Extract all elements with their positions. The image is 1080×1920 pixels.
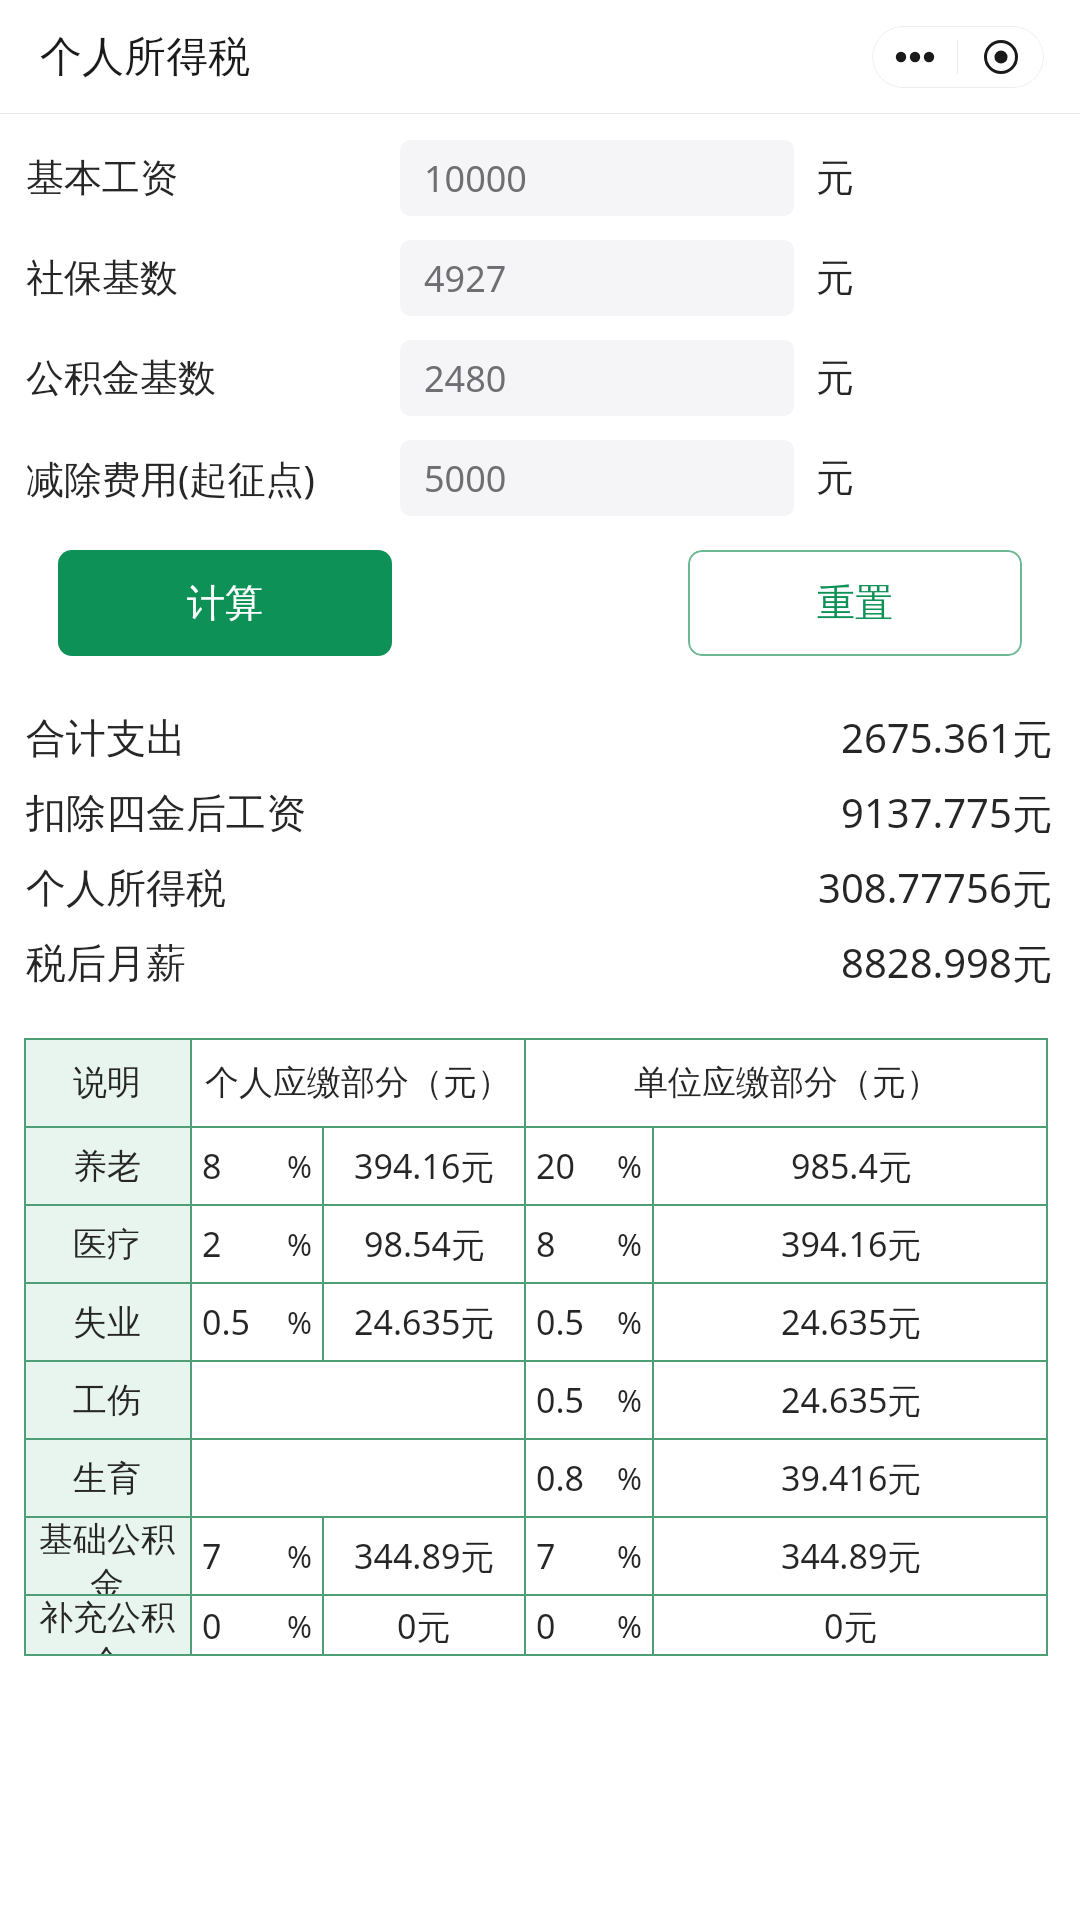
staticText: 基础公积金 bbox=[24, 1518, 190, 1594]
staticText: 308.77756元 bbox=[818, 860, 1052, 915]
staticText: 医疗 bbox=[73, 1223, 141, 1266]
staticText: 元 bbox=[816, 154, 854, 202]
staticText: 2 bbox=[202, 1221, 222, 1267]
staticText: 9137.775元 bbox=[841, 785, 1052, 840]
staticText: 生育 bbox=[73, 1457, 141, 1500]
staticText: % bbox=[617, 1224, 642, 1265]
staticText: 计算 bbox=[187, 579, 263, 627]
staticText: 扣除四金后工资 bbox=[26, 788, 306, 838]
staticText: % bbox=[287, 1606, 312, 1647]
staticText: % bbox=[617, 1536, 642, 1577]
staticText: 失业 bbox=[73, 1301, 141, 1344]
staticText: % bbox=[617, 1146, 642, 1187]
staticText: 8828.998元 bbox=[841, 935, 1052, 990]
staticText: 5000 bbox=[424, 454, 507, 503]
staticText: 养老 bbox=[73, 1145, 141, 1188]
button[interactable]: 减除费用(起征点) bbox=[0, 428, 1080, 528]
staticText: 税后月薪 bbox=[26, 938, 186, 988]
staticText: 0.5 bbox=[536, 1299, 585, 1345]
staticText: % bbox=[617, 1302, 642, 1343]
staticText: 20 bbox=[536, 1143, 575, 1189]
button[interactable]: 计算 bbox=[58, 550, 392, 656]
button[interactable]: 税后月薪 bbox=[0, 925, 1080, 1000]
button[interactable]: 合计支出 bbox=[0, 700, 1080, 775]
staticText: 2480 bbox=[424, 354, 507, 403]
staticText: 394.16元 bbox=[781, 1221, 922, 1267]
staticText: 24.635元 bbox=[354, 1299, 495, 1345]
staticText: % bbox=[287, 1302, 312, 1343]
staticText: 元 bbox=[816, 354, 854, 402]
staticText: 元 bbox=[816, 454, 854, 502]
staticText: 8 bbox=[536, 1221, 556, 1267]
staticText: 10000 bbox=[424, 154, 527, 203]
staticText: 工伤 bbox=[73, 1379, 141, 1422]
staticText: 元 bbox=[816, 254, 854, 302]
staticText: 0.8 bbox=[536, 1455, 585, 1501]
staticText: 个人应缴部分（元） bbox=[205, 1061, 511, 1104]
staticText: 7 bbox=[536, 1533, 556, 1579]
staticText: % bbox=[617, 1380, 642, 1421]
staticText: % bbox=[617, 1606, 642, 1647]
staticText: 344.89元 bbox=[781, 1533, 922, 1579]
staticText: % bbox=[287, 1536, 312, 1577]
staticText: 0元 bbox=[824, 1603, 878, 1649]
staticText: % bbox=[287, 1224, 312, 1265]
staticText: 985.4元 bbox=[791, 1143, 912, 1189]
staticText: 合计支出 bbox=[26, 713, 186, 763]
staticText: 8 bbox=[202, 1143, 222, 1189]
staticText: 公积金基数 bbox=[26, 354, 400, 402]
staticText: 补充公积金 bbox=[24, 1596, 190, 1656]
staticText: 4927 bbox=[424, 254, 507, 303]
staticText: 说明 bbox=[73, 1061, 141, 1104]
staticText: 单位应缴部分（元） bbox=[634, 1061, 940, 1104]
staticText: 39.416元 bbox=[781, 1455, 922, 1501]
staticText: 0.5 bbox=[536, 1377, 585, 1423]
staticText: 2675.361元 bbox=[841, 710, 1052, 765]
staticText: 24.635元 bbox=[781, 1299, 922, 1345]
staticText: % bbox=[617, 1458, 642, 1499]
button[interactable]: More bbox=[872, 26, 957, 88]
staticText: 344.89元 bbox=[354, 1533, 495, 1579]
staticText: 基本工资 bbox=[26, 154, 400, 202]
staticText: 重置 bbox=[817, 579, 893, 627]
staticText: 减除费用(起征点) bbox=[26, 452, 400, 504]
button[interactable]: 公积金基数 bbox=[0, 328, 1080, 428]
button[interactable]: 个人所得税 bbox=[0, 850, 1080, 925]
button[interactable]: 扣除四金后工资 bbox=[0, 775, 1080, 850]
staticText: 个人所得税 bbox=[26, 863, 226, 913]
staticText: 0 bbox=[202, 1603, 222, 1649]
staticText: 394.16元 bbox=[354, 1143, 495, 1189]
staticText: 0.5 bbox=[202, 1299, 251, 1345]
button[interactable]: 基本工资 bbox=[0, 128, 1080, 228]
staticText: 7 bbox=[202, 1533, 222, 1579]
button[interactable]: 重置 bbox=[688, 550, 1022, 656]
staticText: 98.54元 bbox=[364, 1221, 485, 1267]
staticText: 0 bbox=[536, 1603, 556, 1649]
staticText: 0元 bbox=[397, 1603, 451, 1649]
staticText: 个人所得税 bbox=[40, 31, 250, 84]
button[interactable]: 社保基数 bbox=[0, 228, 1080, 328]
staticText: 24.635元 bbox=[781, 1377, 922, 1423]
staticText: % bbox=[287, 1146, 312, 1187]
staticText: 社保基数 bbox=[26, 254, 400, 302]
button[interactable]: Close bbox=[958, 26, 1044, 88]
